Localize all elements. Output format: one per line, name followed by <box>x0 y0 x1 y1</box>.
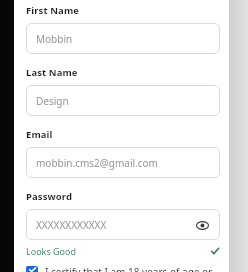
button[interactable]: Show password <box>194 217 210 233</box>
button[interactable]: mobbin.cms2@gmail.com <box>26 147 220 178</box>
staticText: Looks Good <box>26 245 77 257</box>
staticText: mobbin.cms2@gmail.com <box>36 156 158 170</box>
staticText: Last Name <box>26 66 78 79</box>
staticText: First Name <box>26 4 80 17</box>
button[interactable]: Mobbin <box>26 23 220 54</box>
button[interactable]: Design <box>26 85 220 116</box>
staticText: XXXXXXXXXXXX <box>36 218 107 232</box>
staticText: Mobbin <box>36 32 73 46</box>
staticText: I certify that I am 18 years of age or <box>45 265 213 272</box>
button[interactable]: XXXXXXXXXXXX <box>26 209 220 240</box>
staticText: Password <box>26 190 73 203</box>
staticText: Email <box>26 128 53 141</box>
button[interactable]: I certify that I am 18 years of age or <box>26 265 220 272</box>
staticText: Design <box>36 94 69 108</box>
